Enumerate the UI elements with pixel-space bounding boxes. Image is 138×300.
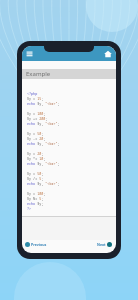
staticText: ?>: [27, 206, 32, 211]
staticText: echo $y;: [27, 201, 44, 206]
staticText: $y -= 20;: [27, 136, 46, 141]
staticText: echo $y, "<br>";: [27, 141, 60, 146]
staticText: $y = 100;: [27, 111, 46, 116]
staticText: $y = 50;: [27, 171, 44, 176]
staticText: $y = 20;: [27, 151, 44, 156]
staticText: Example: [26, 70, 51, 78]
staticText: $y = 15;: [27, 96, 44, 101]
button[interactable]: Menu: [26, 50, 33, 57]
button[interactable]: Home: [104, 50, 112, 58]
button[interactable]: Previous: [25, 242, 47, 247]
staticText: Next: [97, 242, 106, 247]
staticText: echo $y, "<br>";: [27, 181, 60, 186]
staticText: $y /= 5;: [27, 176, 44, 181]
staticText: $y %= 5;: [27, 196, 44, 201]
staticText: echo $y, "<br>";: [27, 161, 60, 166]
staticText: <?php: [27, 91, 38, 96]
staticText: echo $y, "<br>";: [27, 101, 60, 106]
staticText: Previous: [31, 242, 47, 247]
staticText: $y += 200;: [27, 116, 48, 121]
staticText: $y *= 10;: [27, 156, 46, 161]
staticText: echo $y, "<br>";: [27, 121, 60, 126]
button[interactable]: Next: [97, 242, 112, 247]
staticText: $y = 50;: [27, 131, 44, 136]
staticText: $y = 100;: [27, 191, 46, 196]
